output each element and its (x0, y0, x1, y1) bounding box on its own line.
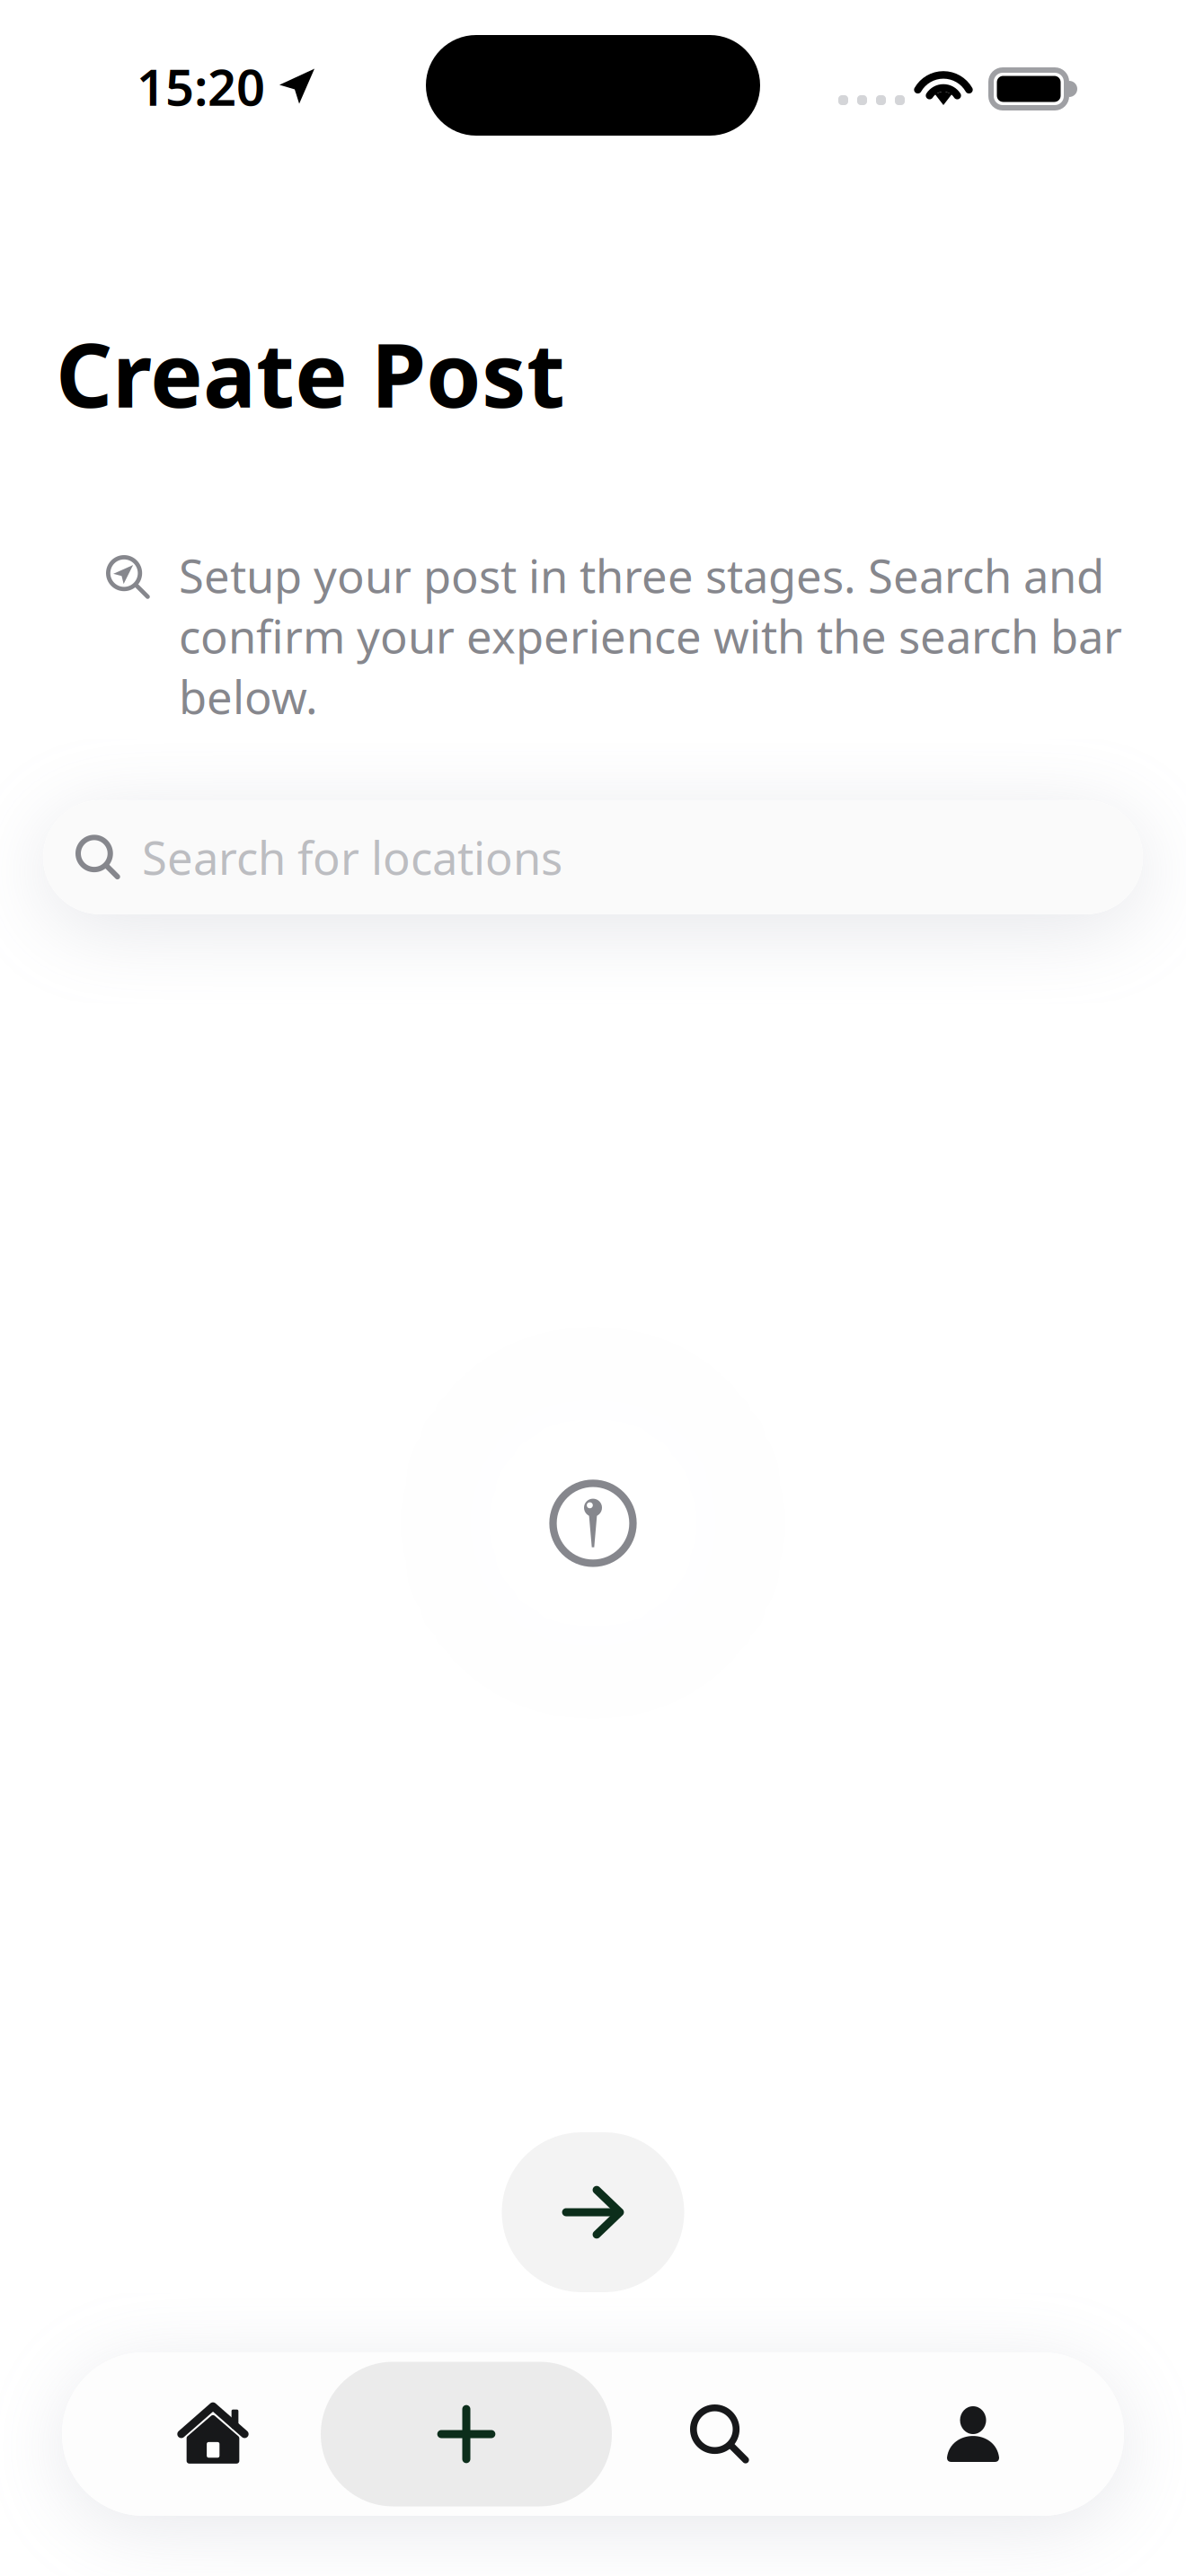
button[interactable]: Continue (502, 2132, 684, 2292)
staticText: Create Post (56, 314, 565, 432)
staticText: Setup your post in three stages. Search … (179, 545, 1122, 727)
button[interactable]: Profile (846, 2352, 1100, 2516)
button[interactable]: Home (86, 2352, 340, 2516)
staticText: Search for locations (142, 827, 562, 887)
button[interactable]: Create post (340, 2352, 593, 2516)
button[interactable]: Search for locations (43, 800, 1143, 914)
staticText: 15:20 (137, 53, 265, 120)
button[interactable]: Search (593, 2352, 846, 2516)
